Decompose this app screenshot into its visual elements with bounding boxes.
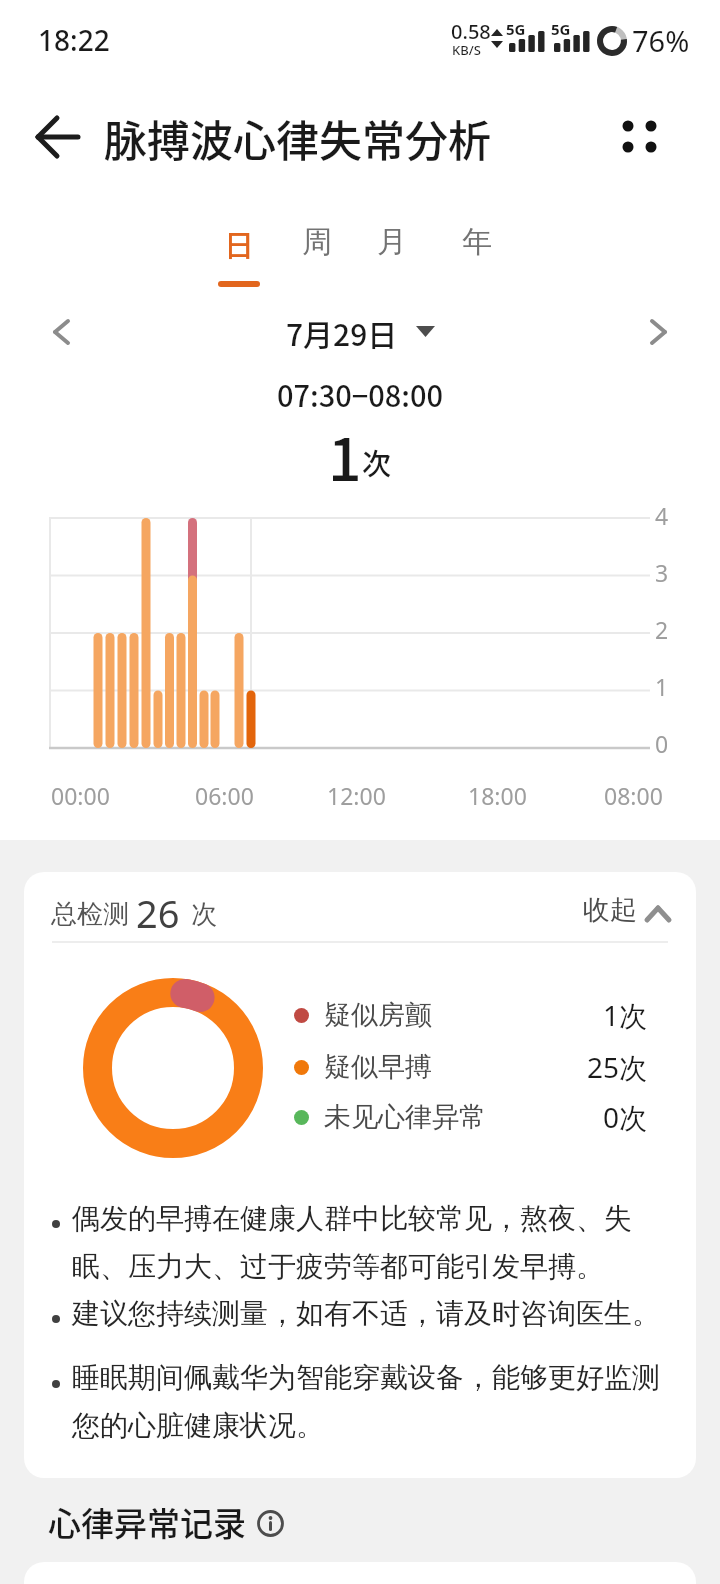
staticText: 0次 — [603, 1098, 648, 1136]
button[interactable]: 月 — [366, 218, 418, 266]
staticText: 5G — [506, 19, 526, 39]
staticText: 月 — [377, 223, 407, 261]
staticText: 3 — [655, 557, 669, 588]
staticText: 0 — [655, 728, 669, 759]
staticText: 26 — [136, 887, 180, 939]
button[interactable] — [250, 1502, 292, 1544]
staticText: 1 — [328, 413, 362, 488]
staticText: 07:30−08:00 — [277, 373, 444, 415]
staticText: 18:22 — [38, 21, 110, 59]
staticText: 1 — [655, 671, 669, 702]
staticText: 日 — [224, 221, 254, 264]
staticText: 偶发的早搏在健康人群中比较常见，熬夜、失 眠、压力大、过于疲劳等都可能引发早搏。 — [72, 1201, 632, 1284]
button[interactable] — [632, 308, 684, 356]
staticText: 1次 — [603, 996, 648, 1034]
staticText: 收起 — [583, 893, 637, 927]
button[interactable] — [20, 105, 92, 169]
staticText: 建议您持续测量，如有不适，请及时咨询医生。 — [72, 1296, 660, 1331]
staticText: 18:00 — [468, 780, 527, 811]
staticText: 00:00 — [51, 780, 110, 811]
staticText: 4 — [655, 500, 669, 531]
staticText: 次 — [362, 441, 392, 483]
button[interactable]: 周 — [291, 218, 343, 266]
staticText: 次 — [191, 898, 217, 931]
staticText: 2 — [655, 614, 669, 645]
button[interactable] — [610, 108, 670, 166]
staticText: 心律异常记录 — [48, 1498, 246, 1546]
staticText: 12:00 — [327, 780, 386, 811]
staticText: 76% — [632, 21, 690, 60]
staticText: 睡眠期间佩戴华为智能穿戴设备，能够更好监测 您的心脏健康状况。 — [72, 1360, 660, 1443]
staticText: 疑似房颤 — [324, 998, 432, 1032]
staticText: 脉搏波心律失常分析 — [104, 107, 491, 169]
button[interactable]: 收起 — [555, 890, 680, 938]
staticText: 周 — [302, 223, 332, 261]
staticText: 06:00 — [195, 780, 254, 811]
button[interactable]: 日 — [213, 218, 265, 266]
button[interactable]: 7月29日 — [0, 310, 720, 354]
staticText: 25次 — [587, 1048, 648, 1086]
staticText: 未见心律异常 — [324, 1100, 486, 1134]
staticText: 7月29日 — [286, 311, 398, 354]
staticText: 年 — [462, 223, 492, 261]
button[interactable] — [36, 308, 88, 356]
staticText: 5G — [551, 19, 571, 39]
staticText: 疑似早搏 — [324, 1050, 432, 1084]
staticText: 总检测 — [51, 898, 129, 931]
staticText: KB/S — [452, 41, 481, 59]
button[interactable]: 年 — [451, 218, 503, 266]
staticText: 0.58 — [451, 18, 491, 45]
staticText: 08:00 — [604, 780, 663, 811]
